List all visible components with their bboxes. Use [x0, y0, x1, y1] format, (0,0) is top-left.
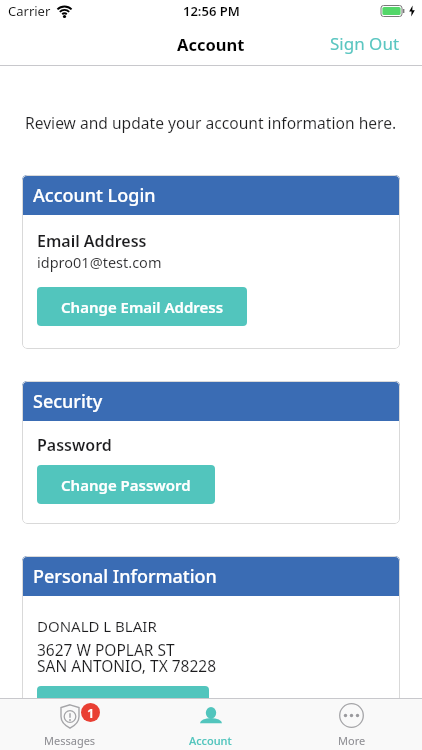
staticText: Security [33, 389, 103, 414]
button[interactable]: Change Password [37, 465, 215, 504]
staticText: More [338, 733, 366, 748]
staticText: Change Password [61, 475, 191, 495]
staticText: Sign Out [330, 32, 400, 55]
staticText: Personal Information [33, 564, 217, 589]
button[interactable]: Change Email Address [37, 287, 247, 326]
staticText: Email Address [37, 230, 147, 252]
staticText: Account Login [33, 183, 156, 208]
button[interactable]: More [281, 699, 422, 750]
staticText: Review and update your account informati… [25, 112, 397, 133]
staticText: Password [37, 434, 112, 456]
staticText: DONALD L BLAIR [37, 616, 157, 636]
staticText: Account [177, 33, 245, 55]
staticText: idpro01@test.com [37, 252, 162, 272]
staticText: Messages [44, 733, 96, 748]
staticText: 12:56 PM [183, 2, 240, 20]
staticText: Carrier [8, 2, 51, 20]
staticText: Account [189, 733, 232, 748]
staticText: 3627 W POPLAR ST SAN ANTONIO, TX 78228 [37, 639, 217, 677]
button[interactable]: Change Address [37, 686, 209, 698]
staticText: Change Email Address [61, 297, 224, 317]
button[interactable]: Account [140, 699, 281, 750]
button[interactable]: 1 [0, 699, 140, 750]
button[interactable]: Sign Out [330, 32, 400, 55]
staticText: 1 [87, 704, 95, 722]
